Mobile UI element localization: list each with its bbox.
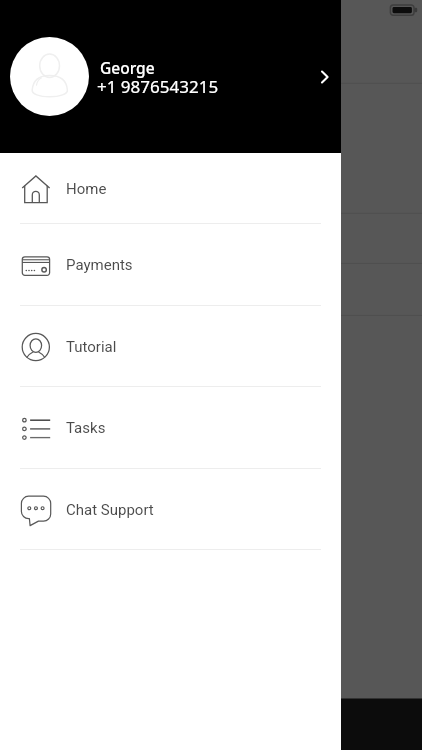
staticText: +1 9876543215	[97, 75, 219, 98]
button[interactable]: Tutorial	[0, 306, 341, 387]
staticText: Payments	[66, 256, 133, 274]
staticText: Tasks	[66, 419, 106, 437]
button[interactable]: Home	[0, 153, 341, 224]
staticText: George	[100, 57, 155, 78]
button[interactable]: Profile details	[315, 67, 335, 87]
button[interactable]: Chat Support	[0, 469, 341, 550]
button[interactable]: Payments	[0, 224, 341, 306]
button[interactable]: George	[0, 0, 341, 153]
button[interactable]: Tasks	[0, 387, 341, 469]
staticText: Chat Support	[66, 501, 154, 519]
staticText: Tutorial	[66, 338, 117, 356]
staticText: Home	[66, 180, 107, 198]
